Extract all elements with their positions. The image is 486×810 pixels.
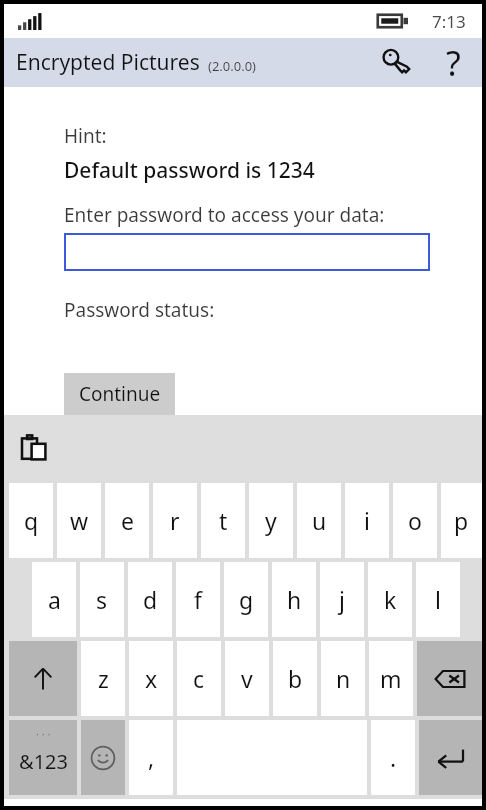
staticText: l — [435, 584, 441, 615]
button[interactable]: , — [129, 720, 173, 795]
staticText: Continue — [79, 381, 161, 407]
button[interactable]: Password input field — [64, 233, 430, 271]
staticText: ? — [446, 40, 461, 86]
button[interactable]: Shift — [9, 641, 77, 716]
staticText: y — [265, 505, 277, 536]
button[interactable]: y — [249, 483, 293, 558]
button[interactable]: n — [321, 641, 365, 716]
staticText: Default password is 1234 — [64, 156, 315, 185]
staticText: Enter password to access your data: — [64, 202, 385, 228]
button[interactable]: Backspace — [417, 641, 482, 716]
staticText: h — [287, 584, 302, 615]
staticText: Encrypted Pictures — [16, 48, 200, 77]
staticText: p — [454, 505, 469, 536]
staticText: Password status: — [64, 297, 215, 323]
staticText: a — [48, 584, 61, 615]
button[interactable]: . — [371, 720, 415, 795]
button[interactable]: Paste from clipboard — [12, 426, 56, 470]
staticText: · · · — [36, 726, 51, 741]
staticText: e — [121, 505, 134, 536]
button[interactable]: v — [225, 641, 269, 716]
button[interactable]: l — [416, 562, 460, 637]
staticText: &123 — [19, 748, 68, 775]
button[interactable]: g — [224, 562, 268, 637]
staticText: x — [145, 663, 158, 694]
button[interactable]: r — [153, 483, 197, 558]
button[interactable]: e — [105, 483, 149, 558]
staticText: b — [288, 663, 303, 694]
staticText: g — [239, 584, 254, 615]
button[interactable]: j — [320, 562, 364, 637]
button[interactable]: m — [369, 641, 413, 716]
button[interactable]: f — [176, 562, 220, 637]
button[interactable]: z — [81, 641, 125, 716]
button[interactable]: b — [273, 641, 317, 716]
button[interactable]: q — [9, 483, 53, 558]
staticText: q — [24, 505, 39, 536]
button[interactable]: Change password — [374, 40, 420, 86]
staticText: n — [336, 663, 351, 694]
staticText: 7:13 — [432, 10, 466, 33]
staticText: o — [408, 505, 422, 536]
staticText: r — [170, 505, 180, 536]
button[interactable]: t — [201, 483, 245, 558]
staticText: v — [241, 663, 253, 694]
button[interactable]: x — [129, 641, 173, 716]
button[interactable]: i — [345, 483, 389, 558]
staticText: u — [312, 505, 327, 536]
button[interactable]: o — [393, 483, 437, 558]
button[interactable]: Help — [430, 40, 476, 86]
staticText: (2.0.0.0) — [208, 57, 256, 75]
button[interactable]: s — [80, 562, 124, 637]
button[interactable]: · · · — [9, 720, 77, 795]
staticText: t — [219, 505, 228, 536]
staticText: k — [384, 584, 397, 615]
button[interactable]: a — [32, 562, 76, 637]
staticText: i — [364, 505, 370, 536]
staticText: d — [143, 584, 158, 615]
button[interactable]: p — [441, 483, 482, 558]
button[interactable]: Enter — [419, 720, 482, 795]
staticText: f — [194, 584, 202, 615]
button[interactable]: u — [297, 483, 341, 558]
staticText: m — [380, 663, 402, 694]
button[interactable]: k — [368, 562, 412, 637]
staticText: j — [339, 584, 345, 615]
button[interactable]: c — [177, 641, 221, 716]
staticText: Hint: — [64, 123, 107, 149]
staticText: w — [70, 505, 89, 536]
button[interactable]: h — [272, 562, 316, 637]
button[interactable]: w — [57, 483, 101, 558]
staticText: , — [148, 742, 155, 773]
staticText: . — [390, 742, 397, 773]
button[interactable]: d — [128, 562, 172, 637]
staticText: c — [193, 663, 205, 694]
staticText: z — [98, 663, 109, 694]
staticText: s — [96, 584, 108, 615]
button[interactable]: Continue — [64, 373, 175, 415]
button[interactable]: Emoji — [81, 720, 125, 795]
